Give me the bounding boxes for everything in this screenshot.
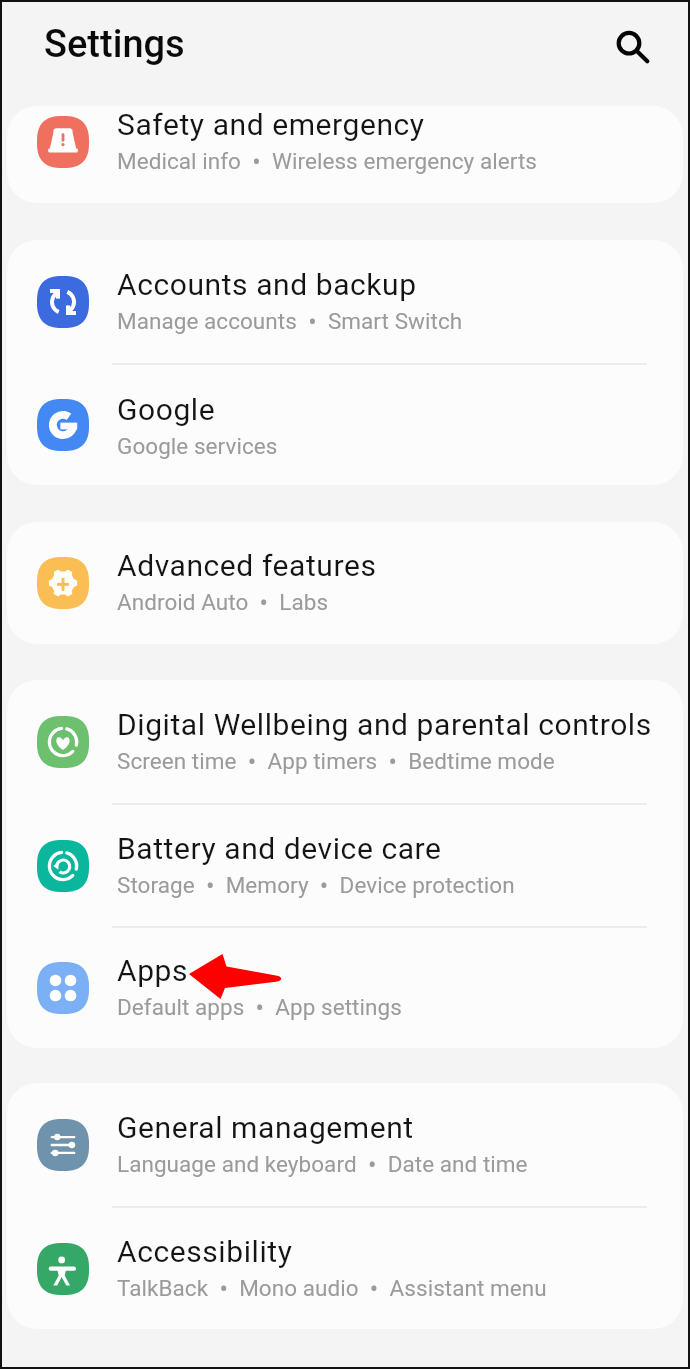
staticText: Language and keyboard • Date and time [117, 1151, 528, 1180]
staticText: Safety and emergency [117, 107, 425, 142]
staticText: Screen time • App timers • Bedtime mode [117, 748, 555, 777]
staticText: Default apps • App settings [117, 994, 402, 1023]
staticText: TalkBack • Mono audio • Assistant menu [117, 1275, 547, 1304]
staticText: General management [117, 1110, 414, 1145]
staticText: Google services [117, 433, 278, 459]
button[interactable]: Accessibility [7, 1208, 683, 1329]
staticText: Battery and device care [117, 831, 442, 866]
staticText: Manage accounts • Smart Switch [117, 308, 463, 337]
staticText: Apps [117, 953, 189, 988]
staticText: Android Auto • Labs [117, 589, 329, 618]
button[interactable]: Digital Wellbeing and parental controls [7, 680, 683, 803]
button[interactable]: Search [605, 19, 653, 67]
button[interactable]: Battery and device care [7, 805, 683, 926]
staticText: Accounts and backup [117, 267, 417, 302]
button[interactable]: Safety and emergency [7, 106, 683, 190]
button[interactable]: General management [7, 1083, 683, 1206]
staticText: Google [117, 392, 216, 427]
button[interactable]: Accounts and backup [7, 240, 683, 363]
staticText: Settings [44, 22, 185, 67]
staticText: Medical info • Wireless emergency alerts [117, 148, 537, 177]
button[interactable]: Advanced features [7, 522, 683, 644]
staticText: Digital Wellbeing and parental controls [117, 707, 652, 742]
staticText: Accessibility [117, 1234, 293, 1269]
staticText: Storage • Memory • Device protection [117, 872, 515, 901]
staticText: Advanced features [117, 548, 377, 583]
button[interactable]: Google [7, 365, 683, 485]
button[interactable]: Apps [7, 928, 683, 1048]
